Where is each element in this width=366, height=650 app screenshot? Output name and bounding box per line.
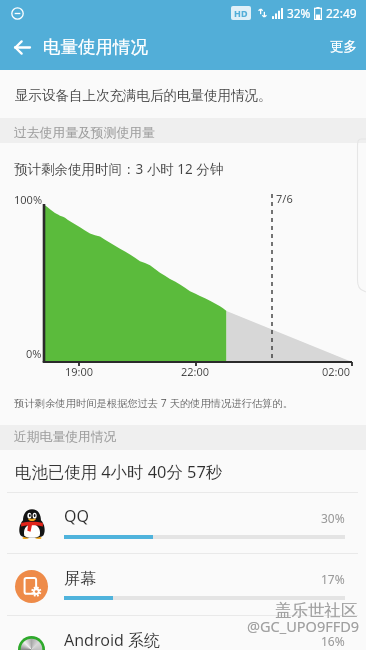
staticText: HD xyxy=(234,7,248,19)
staticText: 16% xyxy=(321,633,345,649)
staticText: 近期电量使用情况 xyxy=(14,429,117,445)
staticText: 屏幕 xyxy=(64,569,96,589)
button[interactable]: Back xyxy=(0,26,44,70)
button[interactable]: 屏幕 xyxy=(0,554,366,616)
staticText: Android 系统 xyxy=(64,629,161,650)
staticText: 过去使用量及预测使用量 xyxy=(14,125,155,141)
staticText: 电量使用情况 xyxy=(43,36,148,58)
staticText: 0% xyxy=(26,346,42,361)
staticText: 显示设备自上次充满电后的电量使用情况。 xyxy=(15,87,272,104)
staticText: 30% xyxy=(321,510,345,526)
staticText: 7/6 xyxy=(276,191,293,206)
button[interactable]: 更多 xyxy=(315,27,366,66)
staticText: 02:00 xyxy=(322,364,351,379)
staticText: 预计剩余使用时间是根据您过去 7 天的使用情况进行估算的。 xyxy=(14,396,293,410)
staticText: 17% xyxy=(321,571,345,587)
button[interactable]: QQ xyxy=(0,493,366,555)
staticText: 32% xyxy=(287,5,311,21)
button[interactable]: Android 系统 xyxy=(0,616,366,650)
staticText: @GC_UPO9FFD9 xyxy=(247,616,360,636)
staticText: 盖乐世社区 xyxy=(275,600,358,621)
staticText: 100% xyxy=(14,192,43,207)
staticText: QQ xyxy=(64,505,89,527)
staticText: 预计剩余使用时间：3 小时 12 分钟 xyxy=(14,160,224,178)
staticText: 22:49 xyxy=(326,5,357,21)
staticText: 更多 xyxy=(330,38,357,55)
staticText: 22:00 xyxy=(181,364,210,379)
staticText: 19:00 xyxy=(65,364,94,379)
staticText: 电池已使用 4小时 40分 57秒 xyxy=(15,460,223,482)
